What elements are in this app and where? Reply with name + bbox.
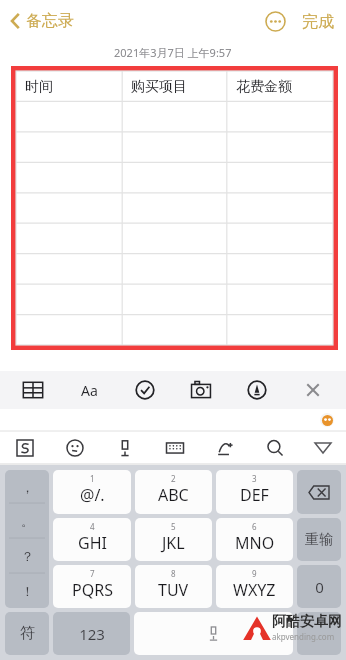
- button[interactable]: 时间: [16, 71, 122, 103]
- staticText: DEF: [240, 484, 269, 506]
- staticText: GHI: [78, 532, 107, 554]
- button[interactable]: Hide keyboard: [300, 432, 346, 464]
- staticText: @/.: [80, 484, 105, 506]
- button[interactable]: Keyboard layout: [150, 432, 200, 464]
- button[interactable]: 7: [53, 565, 131, 608]
- button[interactable]: Checklist: [134, 379, 156, 401]
- staticText: ABC: [158, 484, 189, 506]
- button[interactable]: Emoji: [50, 432, 100, 464]
- button[interactable]: 8: [135, 565, 212, 608]
- staticText: MNO: [235, 532, 275, 554]
- button[interactable]: 重输: [297, 518, 341, 561]
- staticText: 2: [171, 473, 176, 484]
- button[interactable]: [297, 612, 341, 655]
- staticText: 重输: [305, 531, 333, 549]
- button[interactable]: Emoji suggestion: [320, 413, 334, 427]
- staticText: 3: [252, 473, 257, 484]
- button[interactable]: 。: [5, 504, 49, 538]
- button[interactable]: Sogou logo: [0, 432, 50, 464]
- staticText: Aa: [81, 381, 98, 400]
- button[interactable]: 9: [216, 565, 293, 608]
- staticText: ！: [21, 583, 34, 599]
- staticText: 4: [90, 521, 95, 532]
- button[interactable]: Insert table: [22, 379, 44, 401]
- staticText: 花费金额: [236, 78, 292, 96]
- button[interactable]: 购买项目: [122, 71, 227, 103]
- staticText: ，: [21, 479, 34, 495]
- staticText: 购买项目: [131, 78, 187, 96]
- button[interactable]: Handwriting: [200, 432, 250, 464]
- button[interactable]: 123: [53, 612, 130, 655]
- staticText: 符: [20, 624, 35, 643]
- button[interactable]: 符: [5, 612, 49, 655]
- button[interactable]: Space, voice input: [134, 612, 293, 655]
- staticText: akpvending.com: [272, 631, 335, 642]
- button[interactable]: Camera: [190, 379, 212, 401]
- button[interactable]: 备忘录: [6, 7, 78, 35]
- staticText: 完成: [302, 12, 334, 32]
- staticText: 1: [90, 473, 95, 484]
- button[interactable]: ！: [5, 574, 49, 608]
- button[interactable]: 2: [135, 470, 212, 514]
- staticText: 。: [21, 513, 34, 529]
- button[interactable]: Close keyboard: [302, 379, 324, 401]
- button[interactable]: 4: [53, 518, 131, 561]
- button[interactable]: 5: [135, 518, 212, 561]
- staticText: 6: [252, 521, 257, 532]
- staticText: 7: [90, 568, 95, 579]
- staticText: TUV: [158, 579, 189, 601]
- staticText: 0: [315, 577, 324, 597]
- button[interactable]: ，: [5, 470, 49, 503]
- button[interactable]: More options: [261, 7, 290, 36]
- button[interactable]: Search: [250, 432, 300, 464]
- button[interactable]: Markup: [246, 379, 268, 401]
- button[interactable]: Delete: [297, 470, 341, 514]
- staticText: 备忘录: [26, 11, 74, 31]
- button[interactable]: 0: [297, 565, 341, 608]
- staticText: 8: [171, 568, 176, 579]
- staticText: JKL: [162, 532, 185, 554]
- staticText: 9: [252, 568, 257, 579]
- button[interactable]: 3: [216, 470, 293, 514]
- button[interactable]: 6: [216, 518, 293, 561]
- button[interactable]: 完成: [300, 8, 336, 36]
- staticText: WXYZ: [233, 579, 276, 601]
- staticText: 123: [79, 624, 105, 644]
- button[interactable]: 1: [53, 470, 131, 514]
- staticText: 时间: [25, 78, 53, 96]
- button[interactable]: ？: [5, 539, 49, 573]
- staticText: ？: [21, 548, 34, 564]
- staticText: 2021年3月7日 上午9:57: [114, 45, 232, 60]
- button[interactable]: 花费金额: [227, 71, 333, 103]
- staticText: 5: [171, 521, 176, 532]
- button[interactable]: Text format: [78, 379, 100, 401]
- staticText: PQRS: [72, 579, 113, 601]
- button[interactable]: Voice input: [100, 432, 150, 464]
- staticText: 阿酷安卓网: [272, 613, 342, 631]
